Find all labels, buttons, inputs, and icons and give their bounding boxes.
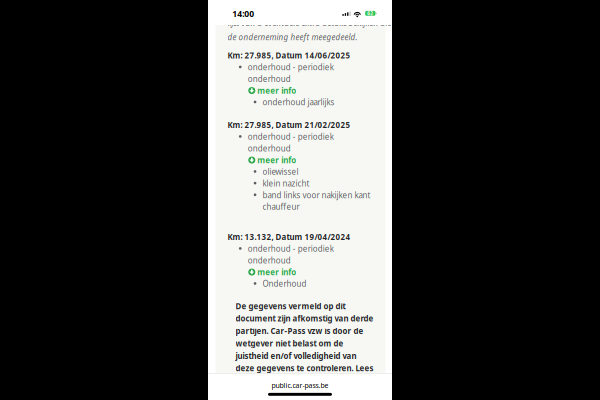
- staticText: Km: 13.132, Datum 19/04/2024: [227, 231, 350, 243]
- button[interactable]: meer info: [248, 266, 296, 278]
- staticText: Km: 27.985, Datum 14/06/2025: [227, 50, 350, 61]
- staticText: onderhoud - periodiek onderhoud: [248, 61, 334, 85]
- button[interactable]: public.car-pass.be: [208, 373, 392, 390]
- staticText: onderhoud - periodiek onderhoud: [248, 243, 334, 266]
- staticText: De gegevens vermeld op dit document zijn…: [235, 300, 373, 374]
- staticText: meer info: [257, 266, 296, 278]
- staticText: lijst van a eventuele extra details beki…: [227, 17, 391, 29]
- staticText: 62: [367, 10, 373, 17]
- button[interactable]: meer info: [248, 154, 296, 166]
- staticText: oliewissel: [263, 166, 299, 178]
- staticText: Onderhoud: [263, 278, 307, 290]
- staticText: band links voor nakijken kant chauffeur: [263, 189, 371, 212]
- staticText: de onderneming heeft meegedeeld.: [227, 31, 357, 43]
- button[interactable]: meer info: [248, 85, 296, 96]
- staticText: Km: 27.985, Datum 21/02/2025: [227, 119, 350, 131]
- staticText: meer info: [257, 154, 296, 166]
- staticText: onderhoud jaarlijks: [263, 96, 335, 108]
- staticText: meer info: [257, 85, 296, 96]
- staticText: public.car-pass.be: [271, 380, 328, 390]
- staticText: onderhoud - periodiek onderhoud: [248, 131, 334, 154]
- staticText: klein nazicht: [263, 178, 310, 189]
- staticText: 14:00: [232, 8, 254, 20]
